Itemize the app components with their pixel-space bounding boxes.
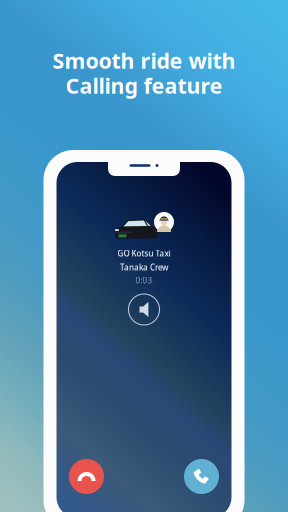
button[interactable]: Speaker: [128, 294, 159, 325]
button[interactable]: Answer call: [184, 459, 219, 494]
staticText: Calling feature: [65, 71, 222, 100]
button[interactable]: End call: [69, 459, 104, 494]
staticText: Smooth ride with: [52, 46, 235, 75]
staticText: Tanaka Crew: [120, 262, 168, 273]
staticText: 0:03: [135, 275, 152, 286]
staticText: GO Kotsu Taxi: [117, 248, 170, 259]
